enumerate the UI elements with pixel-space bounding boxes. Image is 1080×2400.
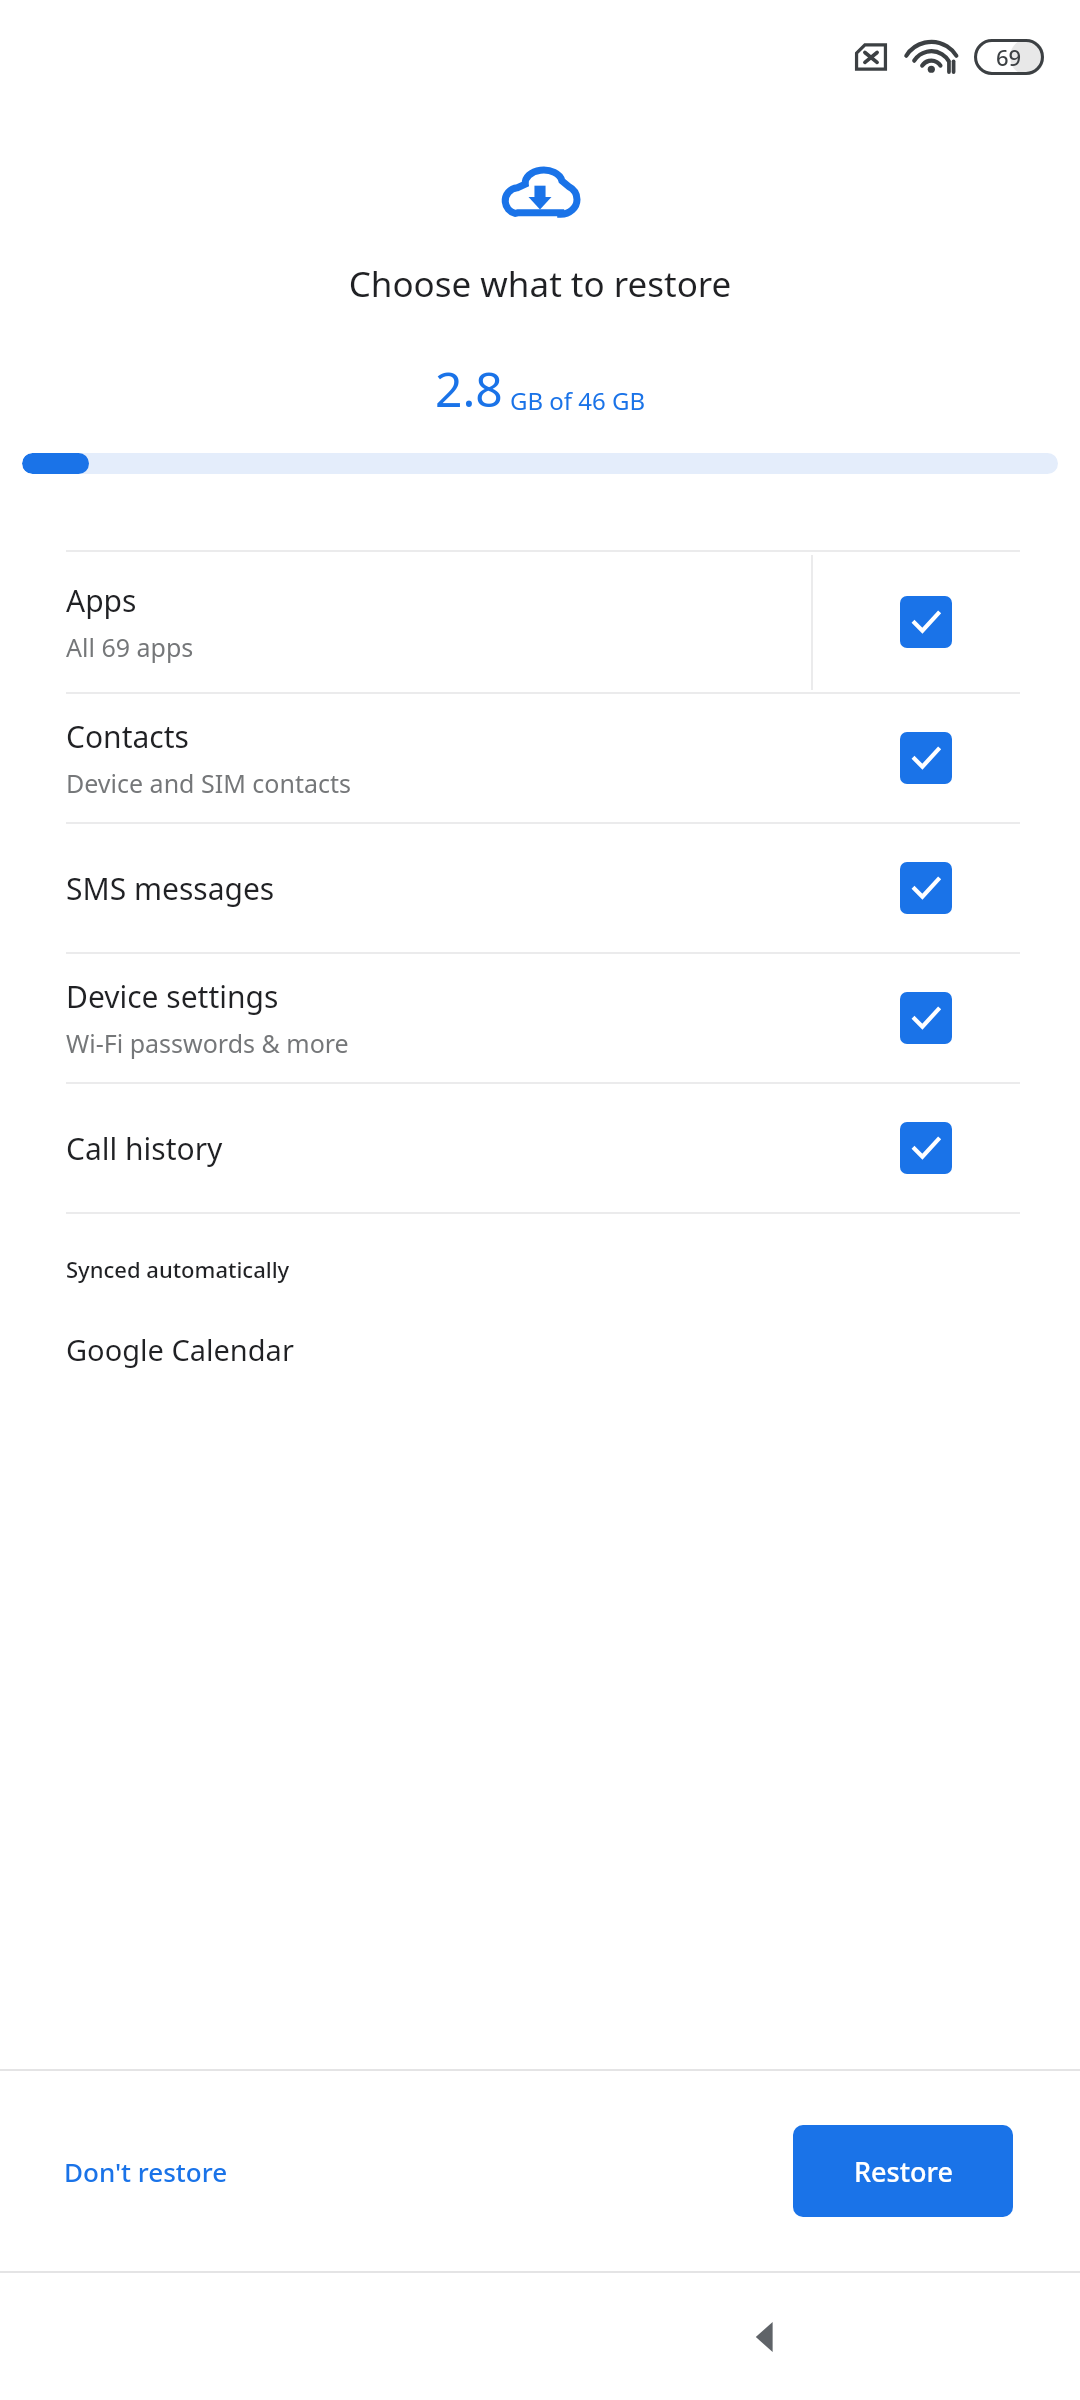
staticText: Wi-Fi passwords & more	[66, 1026, 349, 1060]
staticText: Synced automatically	[66, 1254, 290, 1284]
staticText: Apps	[66, 580, 137, 621]
button[interactable]: Selected	[900, 992, 952, 1044]
staticText: Google Calendar	[66, 1330, 294, 1369]
button[interactable]: Call history	[0, 1084, 1080, 1212]
button[interactable]: SMS messages	[0, 824, 1080, 952]
staticText: Don't restore	[64, 2154, 228, 2189]
button[interactable]: Apps	[0, 552, 1080, 692]
staticText: Device and SIM contacts	[66, 766, 351, 800]
staticText: 69	[996, 42, 1022, 72]
button[interactable]: Selected	[900, 732, 952, 784]
staticText: All 69 apps	[66, 630, 194, 664]
button[interactable]: Back	[730, 2301, 802, 2373]
staticText: Choose what to restore	[0, 260, 1080, 308]
button[interactable]: Selected	[900, 1122, 952, 1174]
staticText: 2.8	[435, 356, 503, 421]
button[interactable]: Device settings	[0, 954, 1080, 1082]
staticText: SMS messages	[66, 868, 275, 909]
button[interactable]: Selected	[900, 862, 952, 914]
button[interactable]: Restore	[793, 2125, 1013, 2217]
staticText: GB of 46 GB	[510, 384, 646, 417]
button[interactable]: Contacts	[0, 694, 1080, 822]
button[interactable]: Selected	[900, 596, 952, 648]
button[interactable]: Don't restore	[40, 2136, 252, 2207]
staticText: Restore	[854, 2153, 953, 2190]
staticText: Call history	[66, 1128, 223, 1169]
staticText: Contacts	[66, 716, 189, 757]
staticText: Device settings	[66, 976, 279, 1017]
